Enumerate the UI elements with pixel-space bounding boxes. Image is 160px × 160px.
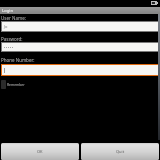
staticText: User Name: — [1, 15, 26, 21]
staticText: Password: — [1, 36, 23, 42]
button[interactable]: Quit — [81, 143, 159, 160]
button[interactable]: Remember — [1, 79, 25, 89]
button[interactable]: OK — [1, 143, 79, 160]
staticText: Jo — [4, 24, 8, 29]
staticText: OK — [37, 149, 43, 154]
staticText: Remember — [7, 82, 25, 87]
staticText: Login — [2, 8, 13, 14]
staticText: Phone Number: — [1, 57, 35, 63]
other: Battery — [151, 1, 158, 5]
button[interactable] — [2, 65, 158, 75]
button[interactable]: Jo — [2, 22, 158, 31]
staticText: Quit — [116, 149, 125, 154]
button[interactable] — [2, 43, 158, 51]
